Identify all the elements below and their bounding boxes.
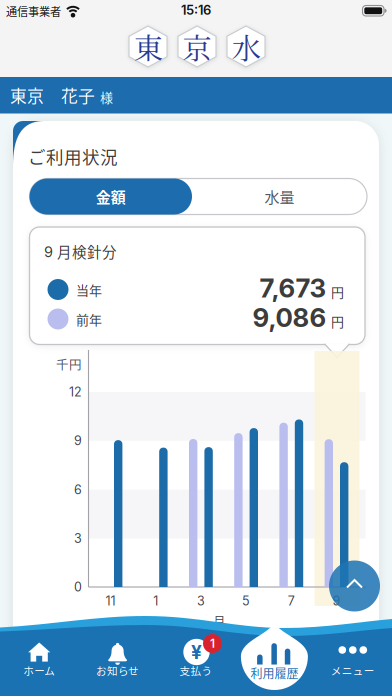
staticText: 9 bbox=[332, 594, 340, 608]
staticText: 9 bbox=[74, 433, 82, 448]
staticText: 円 bbox=[331, 282, 344, 301]
staticText: メニュー bbox=[331, 663, 375, 678]
staticText: 5 bbox=[242, 594, 250, 608]
staticText: 支払う bbox=[179, 663, 212, 678]
staticText: 水量 bbox=[264, 186, 294, 207]
staticText: 京 bbox=[182, 25, 211, 68]
button[interactable]: 金額 bbox=[29, 178, 192, 214]
staticText: 3 bbox=[197, 594, 205, 608]
staticText: 7,673 bbox=[259, 273, 326, 303]
staticText: 前年 bbox=[76, 310, 102, 328]
staticText: 通信事業者 bbox=[6, 3, 61, 19]
staticText: 1 bbox=[210, 636, 215, 651]
button[interactable]: ホーム bbox=[0, 618, 78, 696]
staticText: ホーム bbox=[23, 663, 55, 678]
staticText: 東 bbox=[133, 25, 162, 68]
staticText: 利用履歴 bbox=[250, 664, 298, 681]
staticText: 3 bbox=[74, 531, 82, 546]
staticText: 9 月検針分 bbox=[44, 241, 117, 262]
staticText: 様 bbox=[100, 88, 113, 106]
staticText: 15:16 bbox=[181, 2, 211, 18]
staticText: 1 bbox=[153, 594, 158, 608]
staticText: ¥ bbox=[191, 641, 202, 663]
staticText: 千円 bbox=[56, 355, 82, 373]
button[interactable]: 利用履歴 bbox=[235, 618, 314, 696]
button[interactable]: メニュー bbox=[314, 618, 392, 696]
staticText: ご利用状況 bbox=[28, 144, 118, 168]
staticText: 9,086 bbox=[252, 302, 326, 333]
staticText: 東京 花子 bbox=[10, 83, 95, 107]
staticText: 金額 bbox=[96, 186, 126, 207]
button[interactable]: お知らせ bbox=[78, 618, 157, 696]
button[interactable]: トップへ戻る bbox=[329, 560, 380, 611]
staticText: 0 bbox=[74, 580, 82, 594]
staticText: 当年 bbox=[76, 280, 102, 299]
button[interactable]: 水量 bbox=[192, 178, 367, 214]
staticText: 水 bbox=[231, 25, 260, 68]
staticText: お知らせ bbox=[96, 663, 139, 678]
staticText: 7 bbox=[288, 594, 295, 608]
staticText: 月 bbox=[213, 612, 226, 629]
staticText: 12 bbox=[69, 385, 82, 399]
staticText: 6 bbox=[74, 482, 82, 497]
staticText: 円 bbox=[331, 312, 344, 330]
staticText: 11 bbox=[105, 594, 115, 608]
button[interactable]: ¥ bbox=[157, 618, 235, 696]
